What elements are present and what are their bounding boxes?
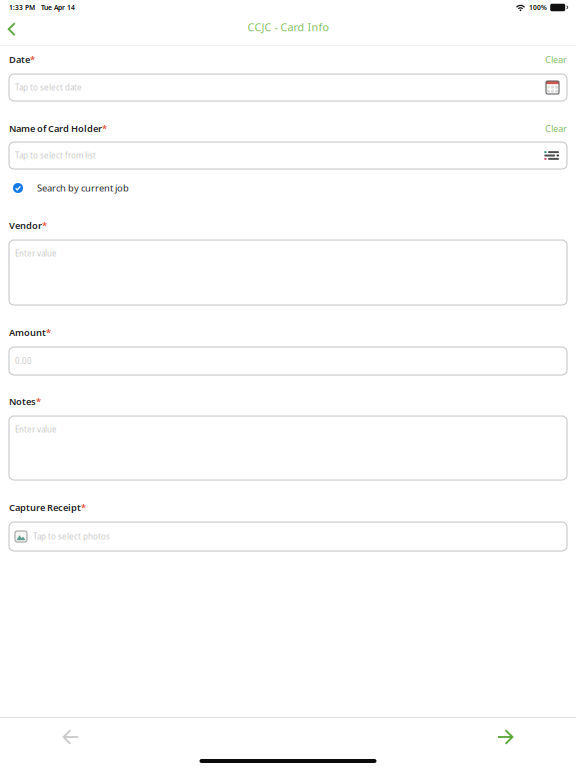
staticText: Date — [9, 53, 30, 66]
staticText: * — [36, 395, 41, 408]
staticText: Tap to select photos — [33, 531, 110, 542]
staticText: Vendor — [9, 219, 42, 232]
staticText: Enter value — [15, 424, 57, 435]
button[interactable]: Enter value — [9, 240, 567, 305]
staticText: Clear — [545, 122, 567, 135]
button[interactable]: Clear — [545, 122, 567, 135]
staticText: 100% — [529, 3, 547, 12]
staticText: * — [102, 122, 107, 135]
button[interactable]: Enter value — [9, 416, 567, 480]
button[interactable]: Back — [0, 15, 30, 45]
staticText: Tap to select from list — [15, 150, 96, 161]
staticText: Capture Receipt — [9, 501, 81, 514]
button[interactable]: Previous — [48, 718, 94, 756]
staticText: Name of Card Holder — [9, 122, 102, 135]
button[interactable]: Tap to select date — [9, 74, 567, 101]
button[interactable]: Tap to select from list — [9, 142, 567, 169]
staticText: * — [42, 219, 47, 232]
staticText: Clear — [545, 53, 567, 66]
staticText: Search by current job — [37, 182, 129, 194]
staticText: 1:33 PM — [9, 3, 35, 12]
staticText: * — [46, 326, 51, 339]
button[interactable]: Search by current job — [9, 181, 567, 195]
staticText: Notes — [9, 395, 36, 408]
staticText: Tue Apr 14 — [41, 3, 75, 12]
staticText: Amount — [9, 326, 46, 339]
button[interactable]: Clear — [545, 53, 567, 66]
staticText: Tap to select date — [15, 82, 82, 93]
staticText: 0.00 — [15, 356, 32, 366]
staticText: Enter value — [15, 248, 57, 259]
staticText: CCJC - Card Info — [247, 20, 328, 34]
staticText: * — [81, 501, 86, 514]
staticText: * — [30, 53, 35, 66]
button[interactable]: Next — [482, 718, 528, 756]
button[interactable]: 0.00 — [9, 347, 567, 375]
button[interactable]: Tap to select photos — [9, 522, 567, 551]
